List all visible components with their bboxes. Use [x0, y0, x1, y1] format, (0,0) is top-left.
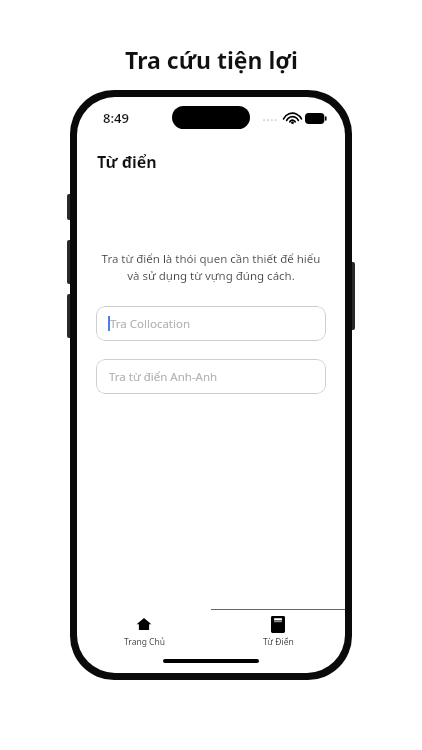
staticText: 8:49	[103, 109, 129, 127]
button[interactable]: Tra từ điển Anh-Anh	[96, 359, 326, 394]
staticText: Từ điển	[97, 151, 157, 173]
staticText: Tra Collocation	[110, 316, 191, 332]
button[interactable]: Tra Collocation	[96, 306, 326, 341]
button[interactable]: Từ Điển	[211, 609, 345, 655]
button[interactable]: Trang Chủ	[77, 609, 211, 655]
staticText: Trang Chủ	[124, 636, 165, 648]
staticText: Tra từ điển là thói quen cần thiết để hi…	[101, 251, 321, 284]
other: Trang Chủ	[136, 616, 152, 632]
staticText: Tra từ điển Anh-Anh	[109, 369, 218, 385]
other: Từ Điển	[271, 616, 285, 633]
staticText: Tra cứu tiện lợi	[125, 44, 298, 75]
staticText: Từ Điển	[263, 636, 294, 648]
